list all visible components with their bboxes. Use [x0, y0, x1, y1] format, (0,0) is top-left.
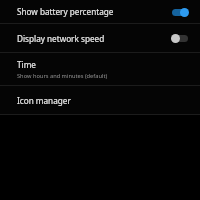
button[interactable]: Time	[0, 53, 200, 85]
button[interactable]: Show battery percentage	[0, 0, 200, 23]
button[interactable]: Icon manager	[0, 86, 200, 114]
staticText: Show battery percentage	[17, 6, 168, 17]
button[interactable]: Display network speed	[0, 24, 200, 52]
staticText: Show hours and minutes (default)	[17, 72, 108, 80]
staticText: Icon manager	[17, 95, 71, 106]
staticText: Time	[17, 59, 36, 70]
staticText: Display network speed	[17, 33, 168, 44]
